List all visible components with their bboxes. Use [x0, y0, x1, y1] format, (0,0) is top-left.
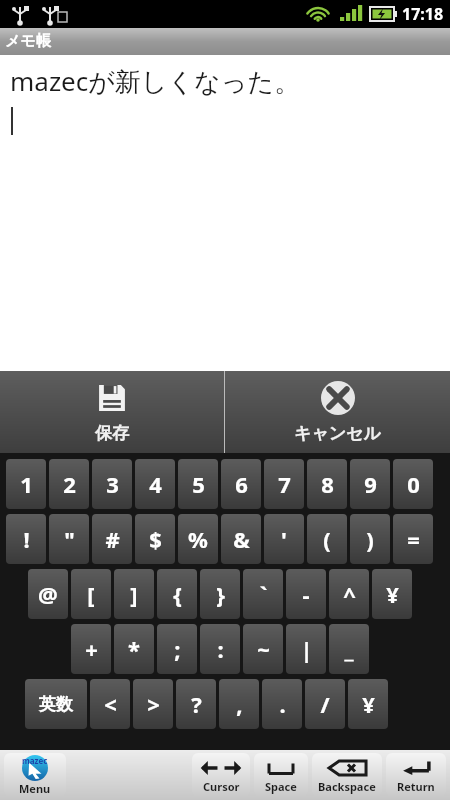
- button[interactable]: %: [178, 514, 218, 564]
- staticText: [: [87, 579, 95, 609]
- button[interactable]: キャンセル: [225, 371, 450, 453]
- button[interactable]: ¥: [372, 569, 412, 619]
- button[interactable]: *: [114, 624, 154, 674]
- staticText: ^: [343, 579, 356, 609]
- button[interactable]: 保存: [0, 371, 224, 453]
- button[interactable]: =: [393, 514, 433, 564]
- button[interactable]: &: [221, 514, 261, 564]
- button[interactable]: (: [307, 514, 347, 564]
- button[interactable]: |: [286, 624, 326, 674]
- button[interactable]: 8: [307, 459, 347, 509]
- staticText: ,: [236, 689, 243, 719]
- staticText: >: [147, 689, 160, 719]
- button[interactable]: 2: [49, 459, 89, 509]
- button[interactable]: <: [90, 679, 130, 729]
- staticText: &: [233, 524, 250, 554]
- staticText: mazecが新しくなった。: [10, 63, 300, 99]
- button[interactable]: 英数: [25, 679, 87, 729]
- button[interactable]: 9: [350, 459, 390, 509]
- button[interactable]: ): [350, 514, 390, 564]
- staticText: 1: [20, 469, 33, 499]
- staticText: <: [104, 689, 117, 719]
- button[interactable]: _: [329, 624, 369, 674]
- button[interactable]: [: [71, 569, 111, 619]
- staticText: ¥: [386, 579, 399, 609]
- button[interactable]: 3: [92, 459, 132, 509]
- button[interactable]: ¥: [348, 679, 388, 729]
- button[interactable]: #: [92, 514, 132, 564]
- staticText: Space: [265, 779, 297, 794]
- button[interactable]: !: [6, 514, 46, 564]
- button[interactable]: -: [286, 569, 326, 619]
- staticText: $: [149, 524, 162, 554]
- button[interactable]: mazecが新しくなった。: [0, 55, 450, 371]
- staticText: #: [105, 524, 120, 554]
- staticText: ": [64, 524, 75, 554]
- staticText: |: [300, 634, 313, 664]
- button[interactable]: {: [157, 569, 197, 619]
- button[interactable]: ;: [157, 624, 197, 674]
- button[interactable]: Cursor: [192, 753, 250, 797]
- staticText: -: [302, 579, 310, 609]
- staticText: キャンセル: [294, 423, 381, 444]
- button[interactable]: `: [243, 569, 283, 619]
- staticText: 17:18: [402, 3, 444, 25]
- staticText: %: [188, 524, 208, 554]
- button[interactable]: 5: [178, 459, 218, 509]
- staticText: }: [216, 579, 225, 609]
- staticText: Cursor: [203, 779, 240, 794]
- staticText: :: [217, 634, 224, 664]
- button[interactable]: Backspace: [312, 753, 382, 797]
- button[interactable]: @: [28, 569, 68, 619]
- staticText: Backspace: [318, 779, 376, 794]
- button[interactable]: 7: [264, 459, 304, 509]
- staticText: +: [85, 634, 98, 664]
- button[interactable]: ': [264, 514, 304, 564]
- staticText: メモ帳: [5, 32, 51, 51]
- staticText: /: [320, 689, 330, 719]
- staticText: @: [38, 579, 58, 609]
- staticText: ): [366, 524, 374, 554]
- staticText: =: [407, 524, 420, 554]
- button[interactable]: 6: [221, 459, 261, 509]
- staticText: _: [344, 634, 354, 664]
- button[interactable]: 0: [393, 459, 433, 509]
- staticText: 9: [364, 469, 377, 499]
- staticText: Return: [397, 779, 435, 794]
- staticText: !: [23, 524, 30, 554]
- staticText: 6: [235, 469, 248, 499]
- staticText: mazec: [22, 755, 48, 766]
- staticText: .: [279, 689, 286, 719]
- button[interactable]: +: [71, 624, 111, 674]
- staticText: 保存: [95, 423, 129, 444]
- staticText: *: [128, 634, 140, 664]
- button[interactable]: ,: [219, 679, 259, 729]
- button[interactable]: /: [305, 679, 345, 729]
- staticText: 4: [149, 469, 162, 499]
- button[interactable]: Space: [254, 753, 308, 797]
- button[interactable]: 4: [135, 459, 175, 509]
- button[interactable]: }: [200, 569, 240, 619]
- button[interactable]: ^: [329, 569, 369, 619]
- button[interactable]: 1: [6, 459, 46, 509]
- button[interactable]: ]: [114, 569, 154, 619]
- staticText: Menu: [19, 781, 51, 796]
- staticText: `: [259, 579, 268, 609]
- button[interactable]: mazec Menu: [4, 753, 66, 797]
- button[interactable]: :: [200, 624, 240, 674]
- staticText: ¥: [362, 689, 375, 719]
- button[interactable]: Return: [386, 753, 446, 797]
- staticText: 7: [278, 469, 291, 499]
- staticText: ;: [174, 634, 181, 664]
- button[interactable]: >: [133, 679, 173, 729]
- staticText: 3: [106, 469, 119, 499]
- button[interactable]: $: [135, 514, 175, 564]
- staticText: ~: [257, 634, 270, 664]
- staticText: ': [281, 524, 287, 554]
- staticText: 8: [321, 469, 334, 499]
- button[interactable]: .: [262, 679, 302, 729]
- button[interactable]: ~: [243, 624, 283, 674]
- staticText: ]: [130, 579, 138, 609]
- button[interactable]: ": [49, 514, 89, 564]
- button[interactable]: ?: [176, 679, 216, 729]
